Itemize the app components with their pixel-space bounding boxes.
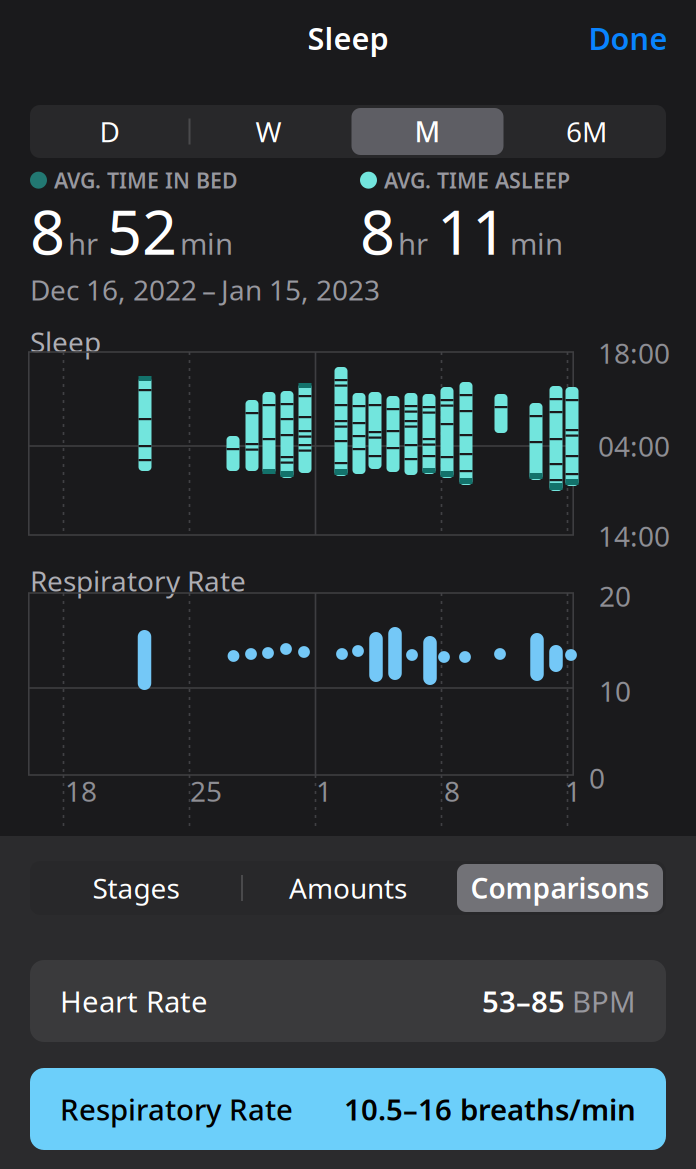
staticText: 25: [190, 772, 222, 810]
staticText: hr: [398, 224, 428, 263]
staticText: AVG. TIME ASLEEP: [384, 166, 570, 194]
button[interactable]: Respiratory Rate: [30, 1068, 666, 1150]
staticText: Comparisons: [470, 869, 649, 907]
staticText: 1: [565, 772, 581, 810]
staticText: Sleep: [30, 323, 101, 360]
staticText: Sleep: [307, 18, 388, 58]
staticText: 52: [107, 190, 177, 272]
staticText: Respiratory Rate: [60, 1089, 293, 1128]
staticText: 11: [437, 190, 507, 272]
staticText: 6M: [566, 113, 607, 150]
staticText: Dec 16, 2022 – Jan 15, 2023: [30, 271, 380, 308]
staticText: 18:00: [598, 334, 670, 372]
staticText: 8: [30, 190, 65, 272]
staticText: 14:00: [598, 517, 670, 555]
button[interactable]: Comparisons: [454, 861, 666, 915]
staticText: D: [99, 113, 119, 150]
button[interactable]: Done: [588, 18, 667, 58]
staticText: min: [510, 224, 563, 263]
staticText: hr: [68, 224, 98, 263]
staticText: 20: [599, 577, 631, 615]
staticText: 8: [360, 190, 395, 272]
staticText: 8: [444, 772, 460, 810]
staticText: Done: [588, 18, 667, 58]
button[interactable]: Stages: [30, 861, 242, 915]
staticText: 0: [589, 759, 605, 797]
staticText: 18: [65, 772, 97, 810]
staticText: Respiratory Rate: [30, 562, 246, 599]
button[interactable]: Amounts: [242, 861, 454, 915]
staticText: M: [414, 113, 440, 150]
staticText: W: [255, 113, 281, 150]
staticText: Heart Rate: [60, 981, 208, 1020]
staticText: BPM: [572, 981, 636, 1020]
button[interactable]: D: [30, 105, 189, 158]
staticText: Stages: [92, 869, 179, 907]
staticText: Amounts: [289, 869, 407, 907]
staticText: 1: [316, 772, 332, 810]
staticText: 53–85: [482, 981, 565, 1020]
button[interactable]: M: [348, 105, 507, 158]
button[interactable]: W: [189, 105, 348, 158]
staticText: 10.5–16 breaths/min: [344, 1089, 636, 1128]
staticText: 10: [599, 672, 631, 710]
staticText: AVG. TIME IN BED: [54, 166, 238, 194]
staticText: min: [180, 224, 233, 263]
button[interactable]: Heart Rate: [30, 960, 666, 1042]
staticText: 04:00: [598, 427, 670, 465]
button[interactable]: 6M: [507, 105, 666, 158]
